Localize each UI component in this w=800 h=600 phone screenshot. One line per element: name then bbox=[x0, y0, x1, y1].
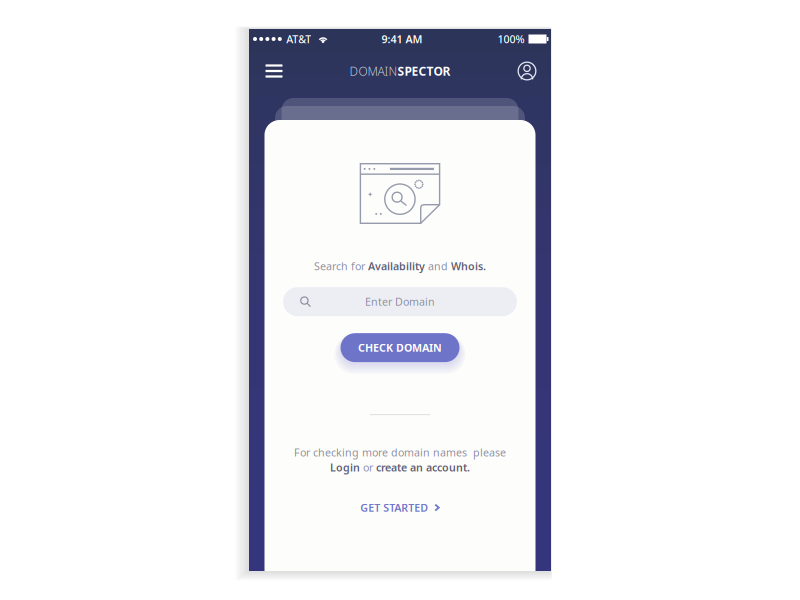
staticText: Availability bbox=[368, 259, 425, 273]
staticText: DOMAIN bbox=[349, 63, 397, 79]
button[interactable]: Account bbox=[509, 53, 545, 89]
staticText: Search for bbox=[314, 259, 368, 273]
button[interactable]: create an account. bbox=[376, 460, 470, 474]
button[interactable]: CHECK DOMAIN bbox=[330, 333, 470, 362]
staticText: CHECK DOMAIN bbox=[358, 341, 442, 355]
button[interactable]: Menu bbox=[256, 53, 292, 89]
button[interactable]: GET STARTED bbox=[350, 496, 450, 519]
button[interactable]: Login bbox=[330, 460, 360, 474]
staticText: Login bbox=[330, 460, 360, 474]
staticText: AT&T bbox=[286, 32, 311, 46]
staticText: create an account. bbox=[376, 460, 470, 474]
staticText: For checking more domain names please bbox=[294, 445, 506, 459]
staticText: SPECTOR bbox=[397, 63, 450, 79]
staticText: GET STARTED bbox=[360, 500, 428, 515]
staticText: 9:41 AM bbox=[381, 32, 422, 46]
staticText: Whois. bbox=[451, 259, 486, 273]
staticText: 100% bbox=[497, 32, 524, 46]
staticText: or bbox=[360, 460, 376, 474]
staticText: Enter Domain bbox=[365, 295, 435, 309]
staticText: and bbox=[425, 259, 451, 273]
